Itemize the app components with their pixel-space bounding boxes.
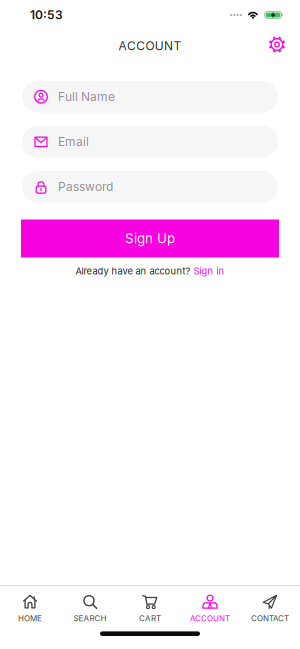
button[interactable]: CONTACT	[240, 594, 300, 623]
button[interactable]: ACCOUNT	[180, 594, 240, 623]
staticText: CART	[139, 614, 161, 623]
staticText: Full Name	[58, 90, 115, 104]
button[interactable]: Password	[22, 171, 278, 202]
button[interactable]: Sign in	[193, 265, 224, 276]
staticText: SEARCH	[73, 614, 106, 623]
button[interactable]: HOME	[0, 594, 60, 623]
button[interactable]: Settings	[268, 35, 286, 53]
button[interactable]: CART	[120, 594, 180, 623]
staticText: Already have an account?	[75, 265, 190, 276]
staticText: CONTACT	[251, 614, 289, 623]
staticText: Sign Up	[125, 231, 175, 246]
staticText: Email	[58, 135, 89, 149]
button[interactable]: SEARCH	[60, 594, 120, 623]
staticText: Sign in	[193, 265, 224, 276]
staticText: Password	[58, 180, 113, 194]
staticText: ACCOUNT	[119, 39, 181, 53]
button[interactable]: Email	[22, 126, 278, 157]
button[interactable]: Sign Up	[21, 219, 279, 257]
staticText: ACCOUNT	[190, 614, 230, 623]
staticText: HOME	[18, 614, 42, 623]
button[interactable]: Full Name	[22, 81, 278, 112]
staticText: 10:53	[30, 8, 63, 22]
